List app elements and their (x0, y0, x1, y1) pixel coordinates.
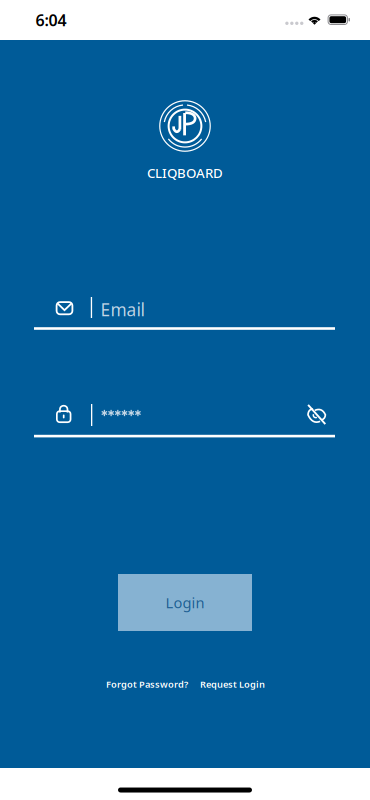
staticText: Email (101, 298, 145, 321)
staticText: Forgot Password? (106, 678, 188, 690)
staticText: 6:04 (35, 9, 66, 31)
button[interactable]: Email (34, 297, 335, 331)
staticText: Login (165, 593, 204, 612)
staticText: CLIQBOARD (147, 164, 223, 182)
button[interactable]: Forgot Password? (106, 678, 188, 690)
button[interactable]: Request Login (200, 678, 265, 690)
staticText: Request Login (200, 678, 265, 690)
button[interactable]: Password (34, 404, 335, 440)
button[interactable]: Show password (34, 404, 326, 423)
button[interactable]: Login (118, 574, 252, 631)
